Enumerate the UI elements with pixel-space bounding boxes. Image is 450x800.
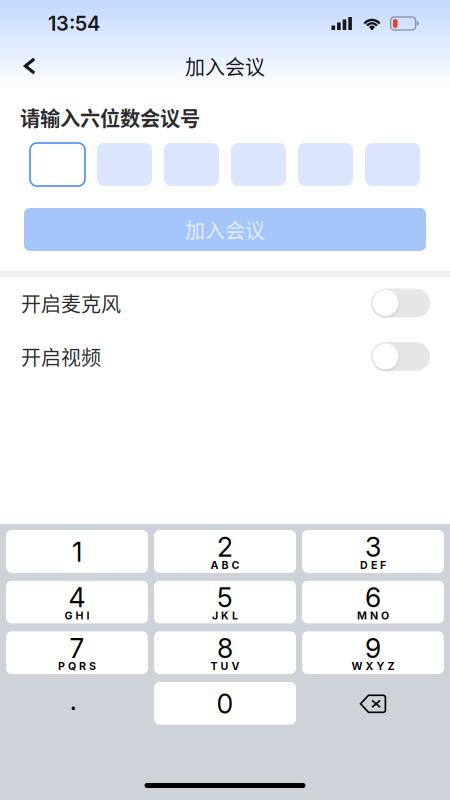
staticText: 2	[217, 531, 233, 563]
button[interactable]: 返回	[8, 44, 52, 88]
button[interactable]: 删除	[302, 682, 444, 726]
button[interactable]: 7	[6, 631, 148, 675]
staticText: 1	[72, 536, 82, 568]
staticText: T U V	[210, 660, 239, 673]
staticText: 9	[365, 632, 381, 664]
staticText: 4	[68, 581, 85, 614]
staticText: 5	[217, 581, 233, 614]
button[interactable]: 6	[302, 581, 444, 625]
button[interactable]: 2	[154, 530, 296, 574]
staticText: 请输入六位数会议号	[20, 103, 200, 132]
button[interactable]: 4	[6, 581, 148, 625]
staticText: D E F	[360, 558, 386, 571]
button[interactable]: 8	[154, 631, 296, 675]
staticText: 7	[69, 632, 84, 664]
staticText: 加入会议	[185, 215, 265, 244]
staticText: W X Y Z	[351, 660, 394, 673]
staticText: 8	[217, 632, 233, 664]
staticText: 0	[216, 688, 233, 720]
staticText: 13:54	[48, 11, 100, 36]
button[interactable]: 小数点	[6, 682, 148, 726]
button[interactable]: 开启视频	[371, 342, 430, 371]
staticText: J K L	[212, 609, 238, 622]
button[interactable]: 3	[302, 530, 444, 574]
staticText: 开启麦克风	[21, 288, 121, 317]
button[interactable]: 加入会议	[24, 208, 426, 251]
button[interactable]: 9	[302, 631, 444, 675]
staticText: 开启视频	[21, 342, 101, 371]
button[interactable]: 1	[6, 530, 148, 574]
staticText: 6	[365, 581, 381, 614]
staticText: A B C	[210, 558, 239, 571]
staticText: M N O	[357, 609, 389, 622]
button[interactable]: 开启麦克风	[371, 288, 430, 317]
button[interactable]: 5	[154, 581, 296, 625]
staticText: P Q R S	[58, 660, 96, 673]
button[interactable]: 0	[154, 682, 296, 726]
staticText: 3	[365, 531, 381, 563]
staticText: G H I	[64, 609, 89, 622]
staticText: 加入会议	[185, 51, 265, 80]
